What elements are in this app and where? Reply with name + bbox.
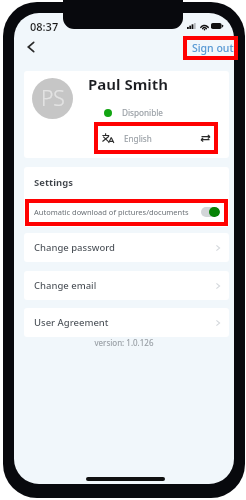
staticText: Change email: [34, 279, 97, 292]
button[interactable]: Back: [19, 36, 43, 58]
staticText: Sign out: [192, 41, 234, 55]
button[interactable]: Automatic download of pictures/documents: [24, 197, 229, 226]
staticText: PS: [41, 84, 65, 113]
button[interactable]: User Agreement: [24, 308, 229, 337]
staticText: English: [124, 133, 152, 144]
staticText: Disponible: [122, 107, 163, 118]
button[interactable]: Change email: [24, 271, 229, 300]
button[interactable]: Automatic download toggle: [201, 207, 220, 217]
staticText: Automatic download of pictures/documents: [34, 207, 189, 217]
staticText: version: 1.0.126: [14, 337, 234, 348]
button[interactable]: Sign out: [191, 37, 234, 58]
staticText: User Agreement: [34, 316, 109, 329]
staticText: Settings: [34, 176, 73, 189]
staticText: 08:37: [30, 19, 59, 34]
staticText: Change password: [34, 241, 115, 254]
button[interactable]: English: [102, 130, 210, 146]
staticText: Paul Smith: [88, 74, 169, 94]
button[interactable]: Change password: [24, 233, 229, 262]
